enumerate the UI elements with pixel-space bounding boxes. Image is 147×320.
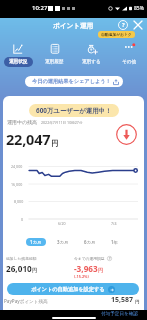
staticText: 運用履歴	[45, 59, 64, 65]
staticText: 26,010	[6, 263, 32, 274]
staticText: 8,000	[14, 199, 24, 204]
staticText: 85%	[134, 5, 144, 12]
button[interactable]: 3カ月	[53, 238, 73, 246]
button[interactable]: ポイントの自動追加を設定する	[7, 283, 139, 295]
staticText: 1カ月	[30, 239, 42, 245]
staticText: ?	[109, 257, 111, 261]
staticText: ポイントの自動追加を設定する	[31, 286, 105, 293]
staticText: 運用する	[82, 59, 101, 65]
staticText: 自動追加がおトク	[101, 32, 132, 37]
staticText: 今日の運用結果をシェアしよう！	[32, 78, 111, 85]
button[interactable]: 6カ月	[80, 238, 100, 246]
staticText: 円	[98, 267, 103, 273]
button[interactable]: 運用状況	[0, 43, 36, 67]
staticText: 16,000	[11, 182, 23, 187]
staticText: 追加した残高総額	[6, 256, 37, 261]
staticText: 6カ月	[84, 239, 96, 245]
staticText: その他	[122, 59, 136, 65]
staticText: 22,047	[6, 129, 51, 149]
staticText: 運用状況	[9, 59, 28, 65]
staticText: 6/20	[58, 221, 66, 226]
button[interactable]: 運用する	[73, 43, 110, 67]
staticText: 円	[32, 267, 37, 273]
button[interactable]: 付与予定日を確認	[101, 311, 138, 317]
staticText: 24,000	[11, 164, 23, 169]
staticText: 円	[51, 139, 59, 148]
staticText: PayPayポイント残高	[4, 298, 48, 304]
button[interactable]: 1年	[107, 238, 122, 246]
button[interactable]: 自動追加がおトク	[98, 31, 135, 38]
staticText: 15,587	[111, 295, 134, 305]
staticText: 1年	[111, 239, 118, 245]
staticText: -3,963	[74, 263, 98, 274]
staticText: 円	[134, 299, 140, 305]
staticText: 運用中の残高	[7, 119, 38, 125]
staticText: (-15.2%)	[74, 274, 89, 279]
staticText: ?	[122, 21, 125, 29]
staticText: 今までの運用損益	[74, 256, 105, 261]
button[interactable]: その他	[110, 43, 147, 67]
button[interactable]: 1カ月	[26, 238, 46, 246]
staticText: 2022年7月11日 10時27分	[41, 120, 83, 125]
staticText: ポイント運用	[53, 22, 94, 30]
staticText: 0	[21, 217, 24, 222]
button[interactable]: Withdraw points	[116, 124, 137, 145]
button[interactable]: 運用履歴	[36, 43, 73, 67]
staticText: 600万ユーザーが運用中！	[36, 106, 112, 115]
button[interactable]: Close	[132, 19, 144, 31]
staticText: 7/4	[111, 221, 117, 226]
button[interactable]: 今日の運用結果をシェアしよう！	[25, 76, 123, 87]
staticText: 10:27	[32, 4, 48, 12]
button[interactable]: Help	[117, 19, 129, 31]
staticText: 3カ月	[57, 239, 69, 245]
